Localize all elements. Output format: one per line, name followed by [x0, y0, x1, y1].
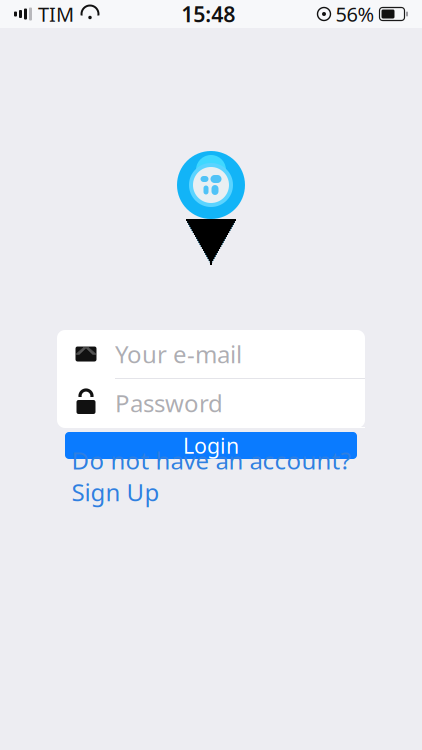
staticText: 15:48: [181, 0, 235, 28]
staticText: 56%: [335, 1, 374, 27]
staticText: TIM: [38, 1, 74, 27]
staticText: Do not have an account? Sign Up: [71, 444, 350, 508]
staticText: Your e-mail: [115, 338, 242, 370]
button[interactable]: Do not have an account? Sign Up: [61, 462, 361, 490]
staticText: Login: [183, 431, 239, 460]
staticText: Password: [115, 387, 223, 419]
button[interactable]: Login: [65, 432, 357, 459]
